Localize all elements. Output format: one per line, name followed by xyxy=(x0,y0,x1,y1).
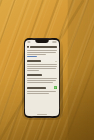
button[interactable] xyxy=(27,56,57,57)
button[interactable] xyxy=(27,46,57,48)
button[interactable] xyxy=(27,60,57,62)
button[interactable] xyxy=(27,74,57,76)
button[interactable]: Open chat xyxy=(24,38,60,118)
button[interactable]: Open chat xyxy=(27,86,57,89)
button[interactable]: Open chat xyxy=(54,86,57,89)
